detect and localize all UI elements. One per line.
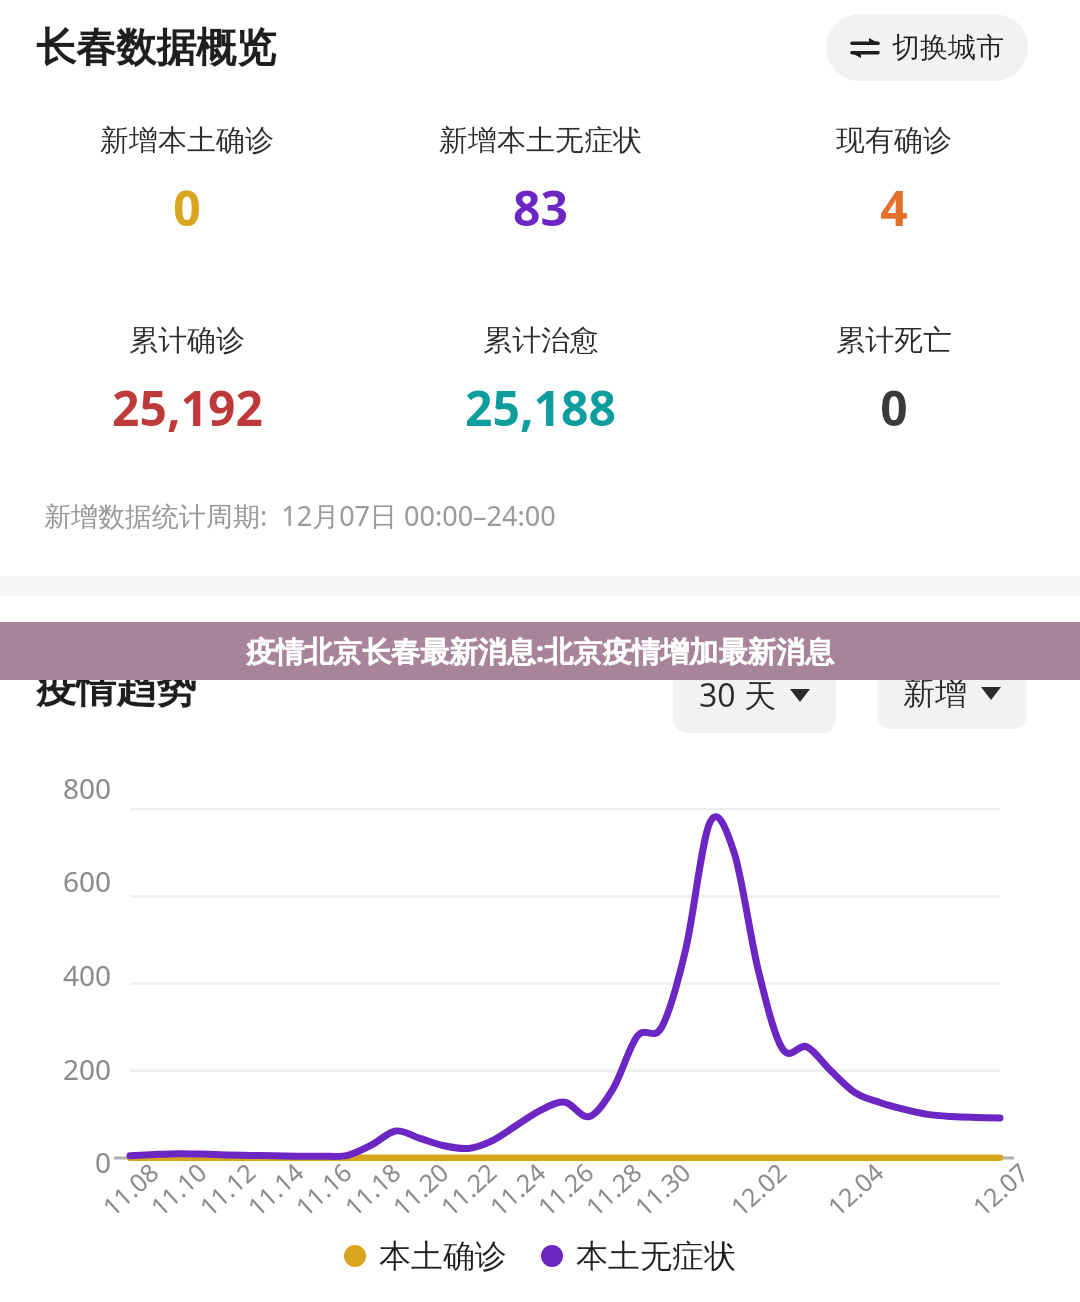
staticText: 累计确诊 [129,322,245,359]
staticText: 11.28 [578,1155,648,1223]
staticText: 12.02 [723,1155,793,1223]
staticText: 400 [63,956,112,994]
staticText: 新增数据统计周期: 12月07日 00:00–24:00 [44,497,556,534]
staticText: 新增本土无症状 [439,122,642,159]
button[interactable]: Switch city [826,14,1028,81]
button[interactable]: 30 天 [673,657,836,733]
staticText: 切换城市 [892,30,1004,65]
staticText: 11.16 [288,1155,358,1223]
staticText: 11.08 [95,1155,165,1223]
staticText: 83 [513,175,568,240]
other: Switch city [850,36,880,60]
staticText: 疫情趋势 [36,663,196,713]
button[interactable]: 累计治愈 [364,322,717,440]
staticText: 累计治愈 [483,322,599,359]
staticText: 30 天 [699,673,776,717]
staticText: 12.04 [820,1155,890,1223]
staticText: 4 [880,175,908,240]
staticText: 长春数据概览 [36,22,276,72]
staticText: 25,192 [112,375,263,440]
staticText: 11.22 [433,1155,503,1223]
staticText: 200 [63,1050,112,1088]
staticText: 本土无症状 [576,1236,736,1276]
staticText: 11.18 [337,1155,407,1223]
staticText: 0 [95,1143,112,1181]
staticText: 11.20 [385,1155,455,1223]
staticText: 11.24 [482,1155,552,1223]
staticText: 新增 [903,673,967,713]
staticText: 现有确诊 [836,122,952,159]
button[interactable]: 累计死亡 [717,322,1070,440]
staticText: 11.12 [192,1155,262,1223]
button[interactable]: 新增本土无症状 [364,122,717,240]
staticText: 800 [63,769,112,807]
staticText: 累计死亡 [836,322,952,359]
staticText: 11.30 [627,1155,697,1223]
button[interactable]: 现有确诊 [717,122,1070,240]
staticText: 11.14 [240,1155,310,1223]
staticText: 12.07 [965,1155,1035,1223]
staticText: 0 [880,375,908,440]
staticText: 600 [63,862,112,900]
button[interactable]: 本土确诊 [344,1236,507,1276]
button[interactable]: 累计确诊 [10,322,364,440]
staticText: 本土确诊 [379,1236,507,1276]
button[interactable]: 新增 [877,657,1027,729]
staticText: 11.26 [530,1155,600,1223]
button[interactable]: 新增本土确诊 [10,122,364,240]
staticText: 0 [173,175,201,240]
staticText: 新增本土确诊 [100,122,274,159]
staticText: 25,188 [465,375,616,440]
staticText: 11.10 [143,1155,213,1223]
staticText: 疫情北京长春最新消息:北京疫情增加最新消息 [246,631,835,671]
button[interactable]: 本土无症状 [541,1236,736,1276]
